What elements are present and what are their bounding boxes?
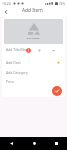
button[interactable]: Home: [23, 137, 45, 150]
button[interactable]: Pick image: [4, 19, 63, 44]
button[interactable]: Back: [0, 137, 23, 150]
button[interactable]: Price: [2, 77, 47, 85]
button[interactable]: Increase: [36, 47, 43, 54]
button[interactable]: Add Desc: [2, 58, 47, 66]
button[interactable]: Add Title/Name: [2, 45, 47, 53]
staticText: Add Item: [22, 7, 43, 14]
button[interactable]: Recent apps: [45, 137, 67, 150]
button[interactable]: Add Category: [2, 68, 47, 76]
staticText: 10:24: [2, 1, 11, 6]
button[interactable]: Back: [1, 7, 10, 16]
staticText: Pick Image: [27, 36, 40, 39]
staticText: 74%: [59, 2, 65, 6]
button[interactable]: Decrease: [50, 47, 57, 54]
button[interactable]: Field error: [26, 48, 31, 53]
staticText: Add Title/Name: [6, 47, 31, 52]
staticText: Add Category: [6, 70, 28, 75]
staticText: Add Desc: [6, 60, 21, 65]
staticText: Price: [6, 79, 14, 84]
button[interactable]: Save item: [52, 86, 62, 96]
